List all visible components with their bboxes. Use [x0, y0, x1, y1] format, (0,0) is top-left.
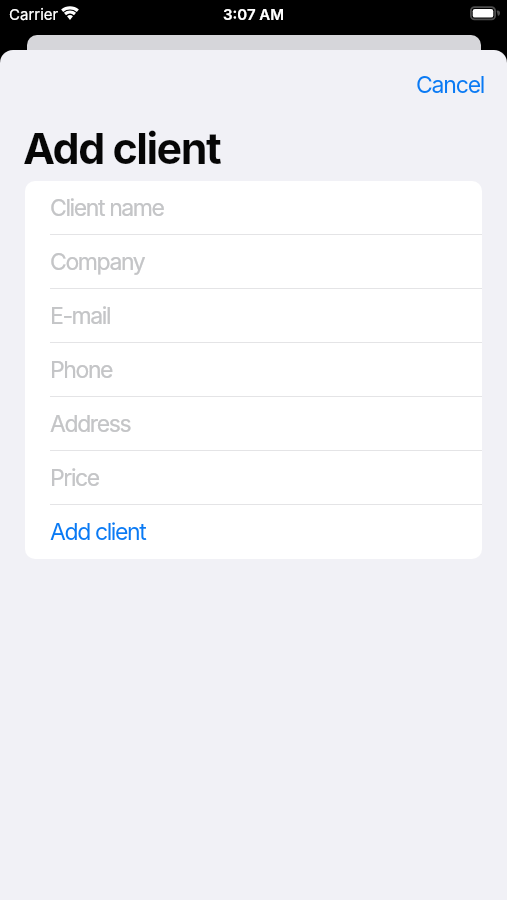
staticText: Client name	[50, 194, 164, 222]
staticText: 3:07 AM	[223, 5, 285, 23]
button[interactable]: Address	[25, 397, 482, 451]
button[interactable]: Add client	[25, 505, 482, 559]
staticText: Carrier	[9, 5, 59, 23]
staticText: Add client	[50, 518, 146, 546]
staticText: Phone	[50, 356, 113, 384]
staticText: Add client	[23, 122, 221, 174]
button[interactable]: E-mail	[25, 289, 482, 343]
button[interactable]: Cancel	[416, 71, 485, 99]
button[interactable]: Client name	[25, 181, 482, 235]
staticText: Company	[50, 248, 145, 276]
staticText: Price	[50, 464, 99, 492]
staticText: E-mail	[50, 302, 111, 330]
button[interactable]: Company	[25, 235, 482, 289]
staticText: Address	[50, 410, 131, 438]
button[interactable]: Phone	[25, 343, 482, 397]
staticText: Cancel	[416, 71, 485, 99]
button[interactable]: Price	[25, 451, 482, 505]
